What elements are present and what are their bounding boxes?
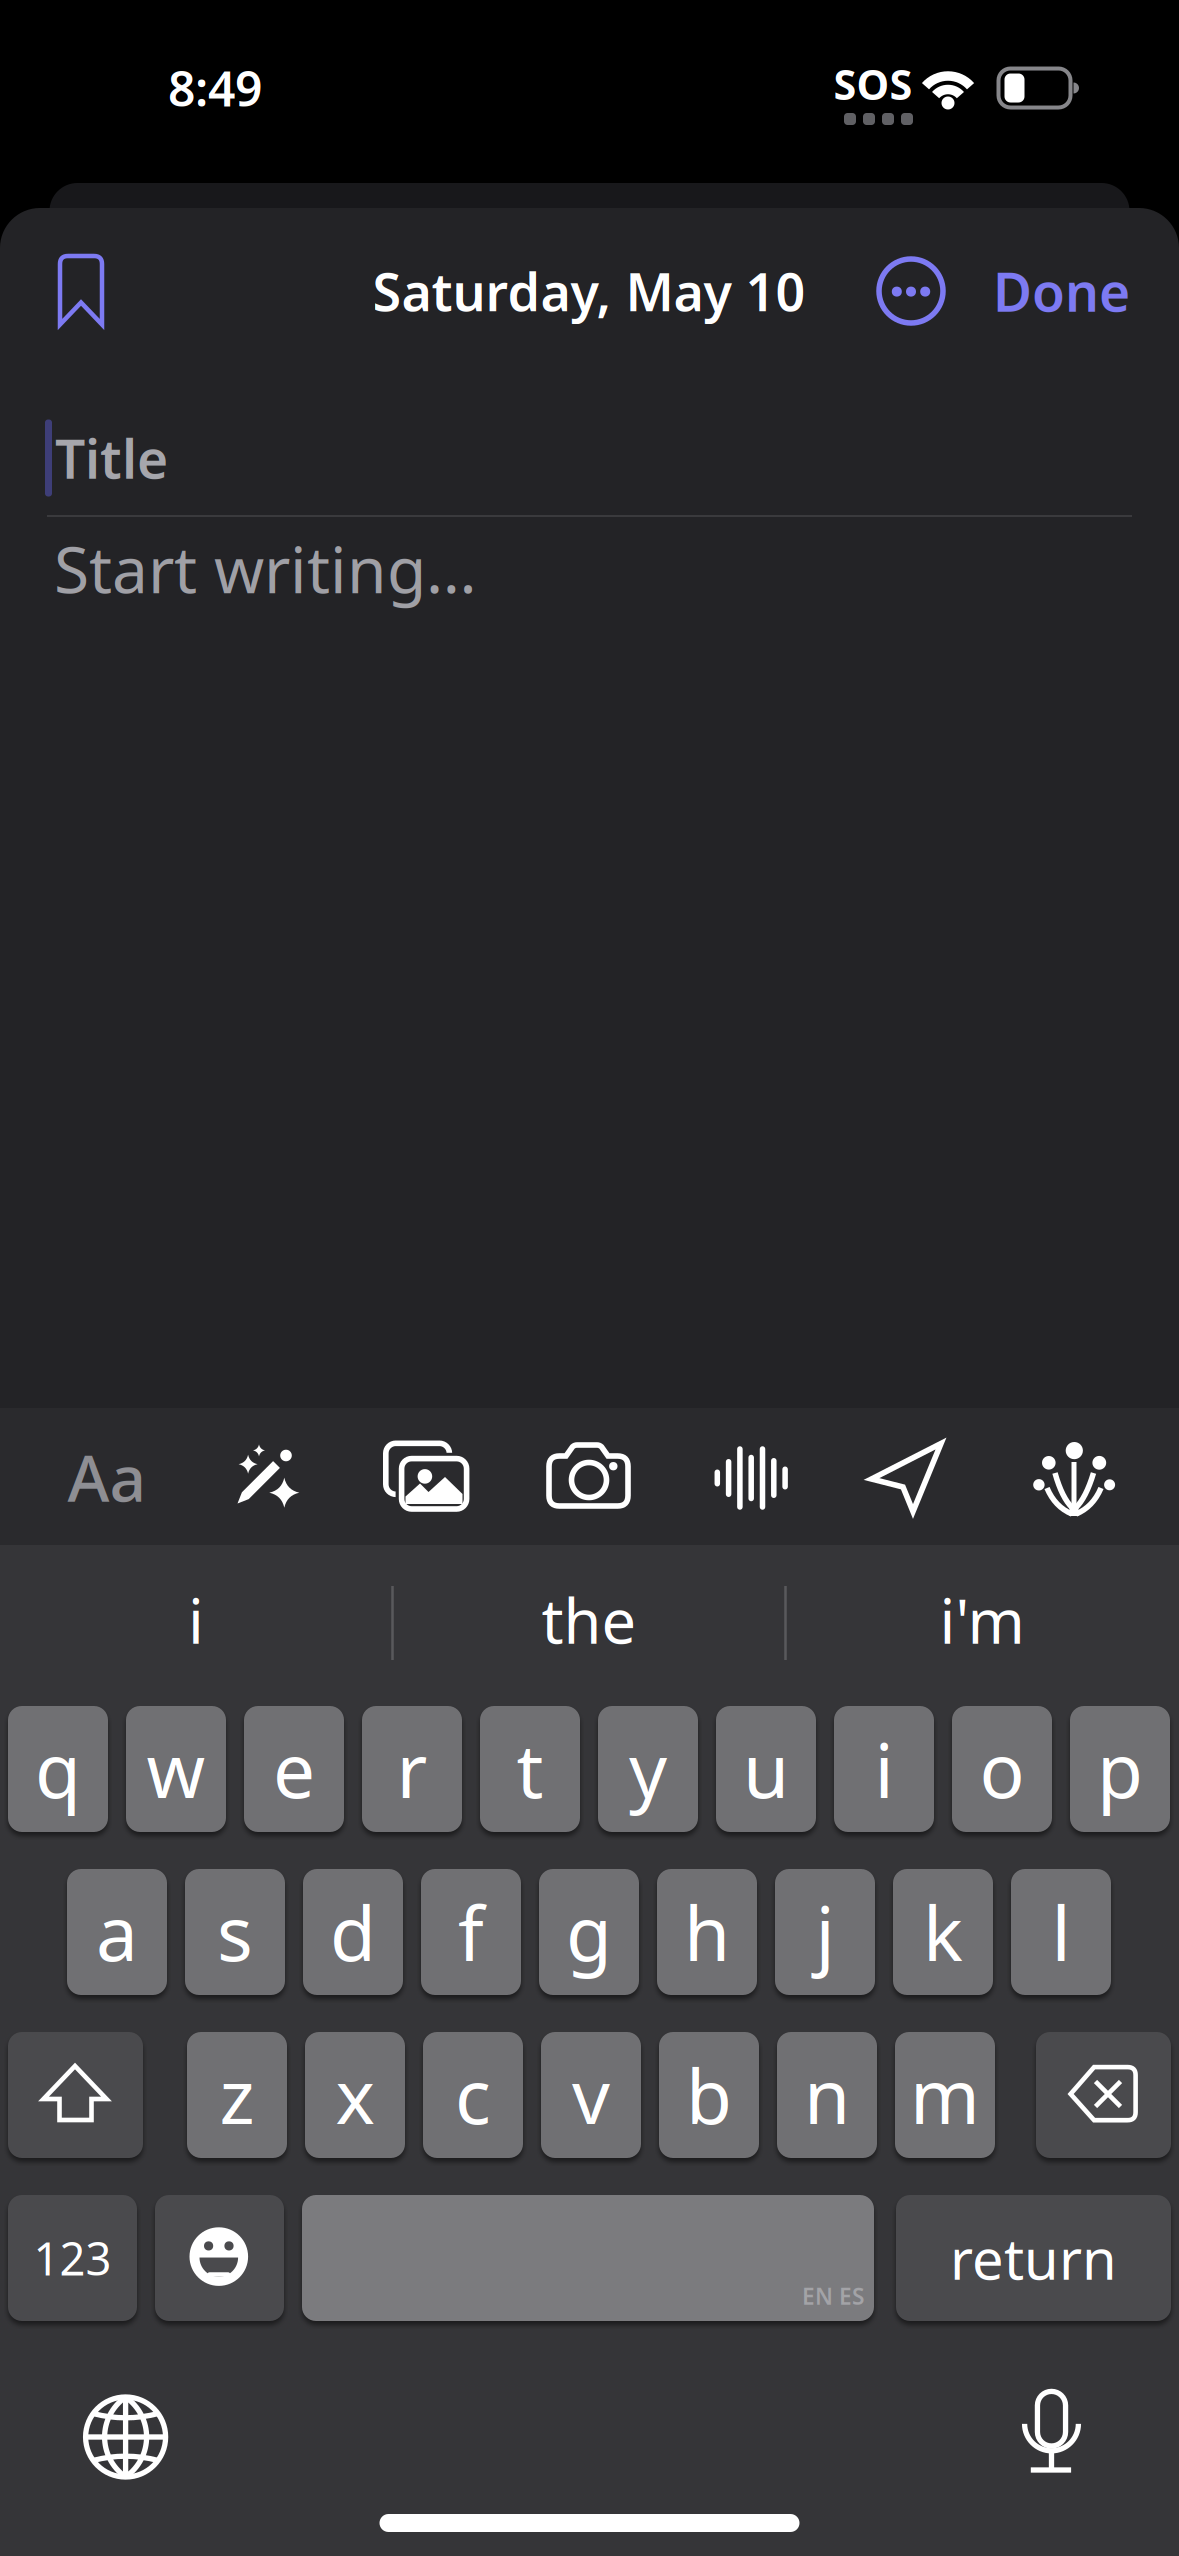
button[interactable]: Bookmark [55, 253, 106, 328]
staticText: r [396, 1719, 427, 1819]
button[interactable]: j [775, 1869, 875, 1995]
button[interactable]: q [8, 1706, 108, 1832]
staticText: SOS [833, 57, 912, 111]
button[interactable]: 123 [8, 2195, 137, 2321]
staticText: n [804, 2045, 850, 2145]
staticText: return [950, 2221, 1117, 2295]
staticText: f [458, 1882, 484, 1982]
staticText: o [979, 1719, 1024, 1819]
staticText: 8:49 [168, 56, 262, 120]
staticText: q [35, 1719, 81, 1819]
button[interactable]: i [834, 1706, 934, 1832]
button[interactable]: Shift [8, 2032, 143, 2158]
button[interactable]: z [187, 2032, 287, 2158]
button[interactable]: Audio [701, 1438, 801, 1518]
button[interactable]: p [1070, 1706, 1170, 1832]
button[interactable]: Dictation [1001, 2378, 1101, 2488]
button[interactable]: Delete [1036, 2032, 1171, 2158]
button[interactable]: Done [910, 246, 1130, 336]
button[interactable]: e [244, 1706, 344, 1832]
staticText: u [743, 1719, 789, 1819]
button[interactable]: v [541, 2032, 641, 2158]
button[interactable]: a [67, 1869, 167, 1995]
button[interactable]: c [423, 2032, 523, 2158]
button[interactable]: o [952, 1706, 1052, 1832]
staticText: z [219, 2045, 254, 2145]
button[interactable]: k [893, 1869, 993, 1995]
button[interactable]: f [421, 1869, 521, 1995]
staticText: i'm [939, 1579, 1024, 1661]
button[interactable]: w [126, 1706, 226, 1832]
staticText: t [516, 1719, 543, 1819]
staticText: a [96, 1882, 138, 1982]
staticText: EN ES [802, 2281, 864, 2311]
button[interactable]: Photos [376, 1433, 476, 1519]
button[interactable]: x [305, 2032, 405, 2158]
staticText: i [188, 1579, 204, 1661]
button[interactable]: r [362, 1706, 462, 1832]
staticText: 123 [33, 2228, 111, 2288]
button[interactable]: u [716, 1706, 816, 1832]
staticText: e [273, 1719, 315, 1819]
staticText: l [1051, 1882, 1070, 1982]
button[interactable]: s [185, 1869, 285, 1995]
staticText: k [923, 1882, 963, 1982]
button[interactable]: Emoji [155, 2195, 284, 2321]
staticText: Saturday, May 10 [372, 256, 805, 326]
staticText: Aa [67, 1434, 146, 1519]
staticText: Start writing… [54, 526, 477, 611]
button[interactable]: b [659, 2032, 759, 2158]
staticText: x [335, 2045, 374, 2145]
staticText: h [684, 1882, 730, 1982]
button[interactable]: Location [858, 1432, 958, 1522]
button[interactable]: m [895, 2032, 995, 2158]
staticText: m [910, 2045, 980, 2145]
staticText: j [815, 1882, 834, 1982]
button[interactable]: t [480, 1706, 580, 1832]
staticText: g [566, 1882, 612, 1982]
staticText: d [330, 1882, 376, 1982]
staticText: the [541, 1579, 636, 1661]
button[interactable]: Next keyboard [76, 2387, 176, 2487]
button[interactable]: Format [37, 1412, 177, 1542]
staticText: Title [55, 423, 168, 493]
staticText: w [146, 1719, 205, 1819]
button[interactable]: return [896, 2195, 1171, 2321]
button[interactable]: n [777, 2032, 877, 2158]
staticText: v [572, 2045, 610, 2145]
button[interactable]: y [598, 1706, 698, 1832]
button[interactable]: l [1011, 1869, 1111, 1995]
button[interactable]: the [399, 1560, 779, 1680]
staticText: y [629, 1719, 667, 1819]
button[interactable]: i'm [792, 1560, 1172, 1680]
button[interactable]: Writing tools [216, 1427, 316, 1527]
button[interactable]: More [878, 258, 944, 324]
button[interactable]: Space [302, 2195, 874, 2321]
staticText: i [874, 1719, 893, 1819]
staticText: Done [993, 256, 1130, 326]
staticText: c [455, 2045, 491, 2145]
button[interactable]: d [303, 1869, 403, 1995]
button[interactable]: Suggestions [1024, 1428, 1124, 1528]
button[interactable]: Camera [538, 1436, 638, 1516]
button[interactable]: h [657, 1869, 757, 1995]
button[interactable]: g [539, 1869, 639, 1995]
staticText: p [1097, 1719, 1143, 1819]
button[interactable]: i [6, 1560, 386, 1680]
staticText: b [686, 2045, 732, 2145]
staticText: s [217, 1882, 253, 1982]
